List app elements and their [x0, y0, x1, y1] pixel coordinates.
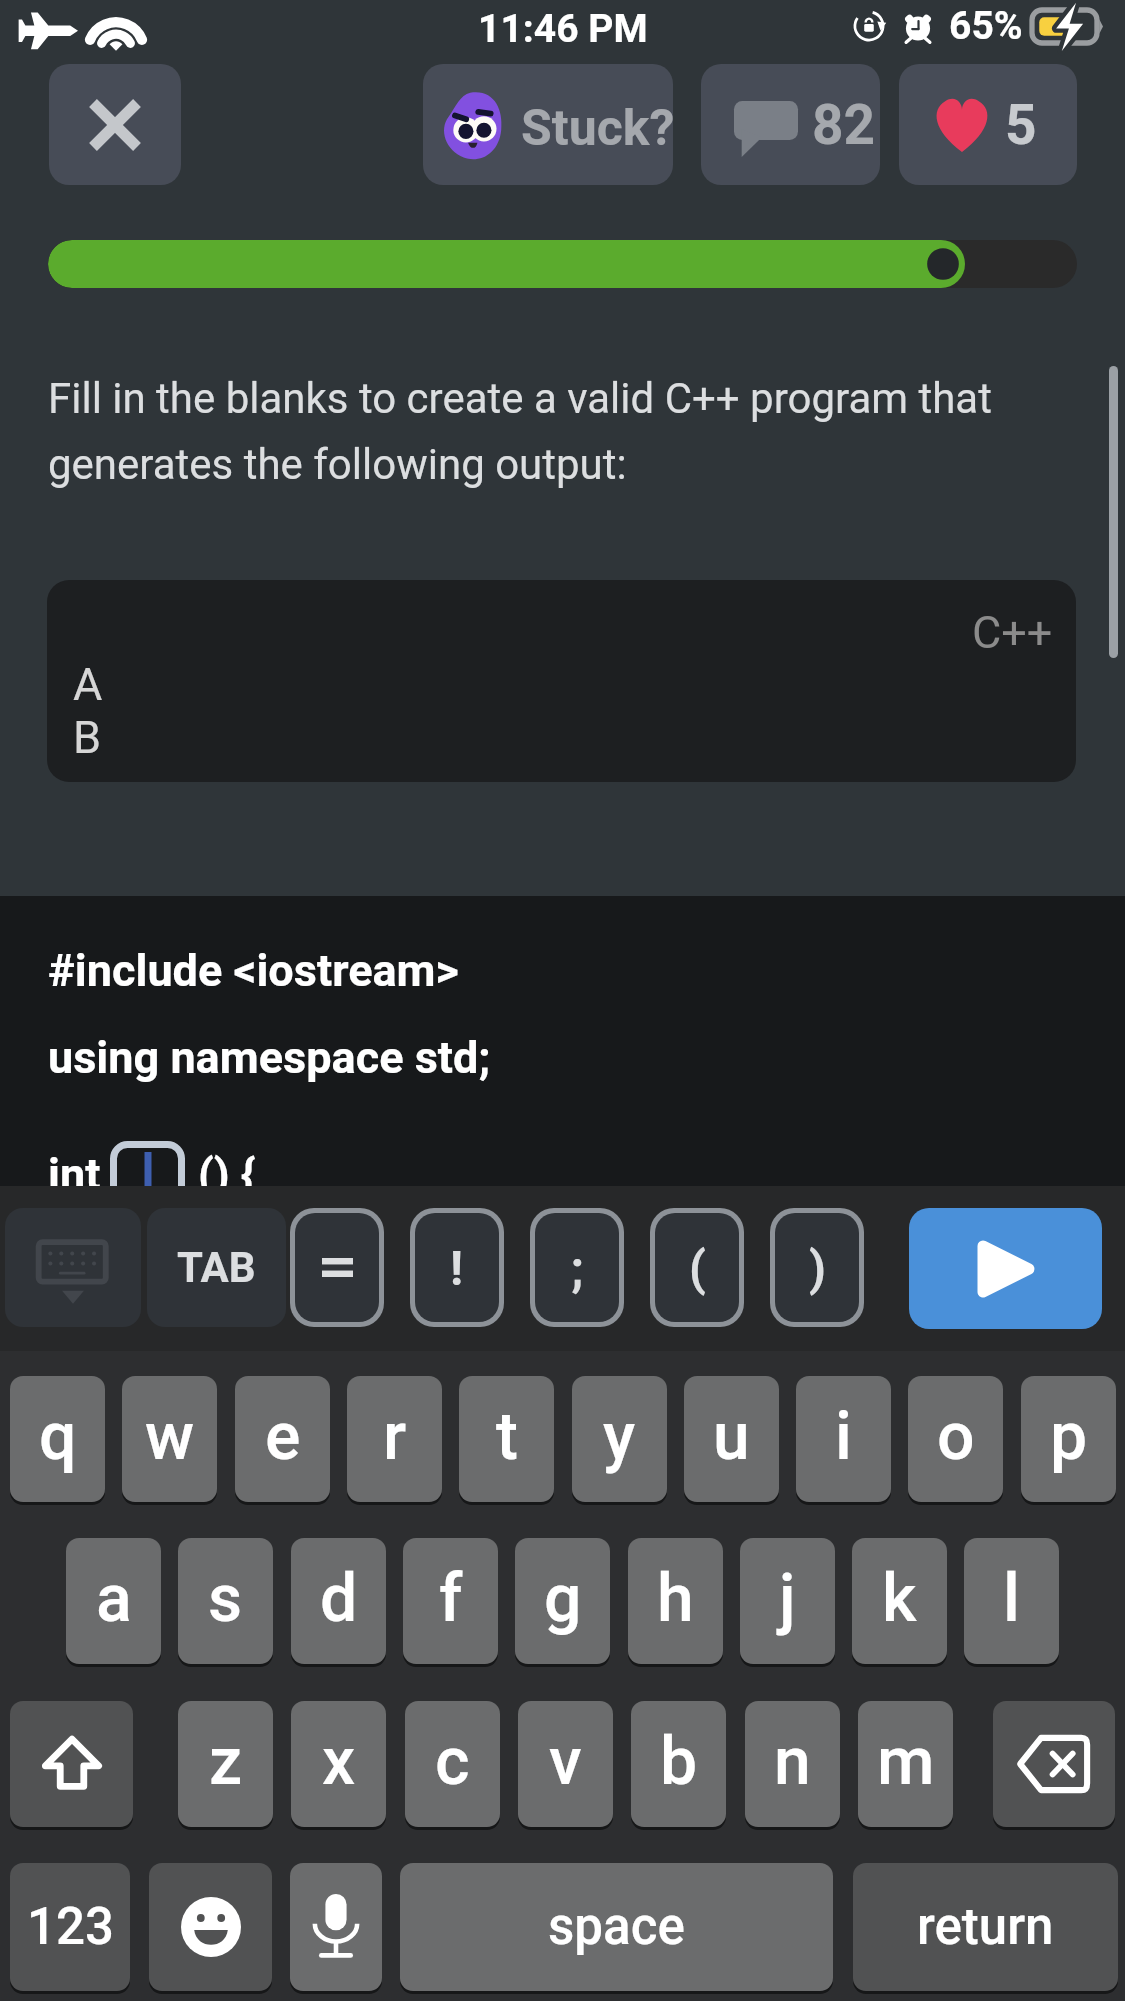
staticText: i [835, 1398, 852, 1475]
staticText: q [39, 1398, 77, 1475]
staticText: using namespace std; [48, 1031, 491, 1084]
staticText: f [439, 1560, 463, 1637]
staticText: a [96, 1560, 132, 1637]
button[interactable]: l [964, 1538, 1059, 1664]
button[interactable]: TAB [147, 1208, 286, 1327]
button[interactable] [295, 1213, 379, 1322]
button[interactable]: q [10, 1376, 105, 1502]
button[interactable]: Close [49, 64, 181, 185]
staticText: j [779, 1560, 796, 1637]
staticText: y [603, 1398, 636, 1475]
button[interactable]: o [908, 1376, 1003, 1502]
staticText: h [657, 1560, 694, 1637]
button[interactable]: i [796, 1376, 891, 1502]
button[interactable]: Dictate [290, 1863, 382, 1991]
button[interactable]: w [122, 1376, 217, 1502]
staticText: x [322, 1723, 356, 1800]
button[interactable]: a [66, 1538, 161, 1664]
staticText: ! [450, 1240, 464, 1296]
staticText: u [713, 1398, 750, 1475]
staticText: l [1003, 1560, 1020, 1637]
button[interactable]: ) [775, 1213, 859, 1322]
button[interactable]: e [235, 1376, 330, 1502]
staticText: g [544, 1560, 582, 1637]
staticText: ( [689, 1240, 706, 1296]
staticText: Fill in the blanks to create a valid C++… [48, 374, 998, 490]
staticText: Stuck? [521, 99, 673, 158]
staticText: w [145, 1398, 195, 1475]
staticText: ) [809, 1240, 826, 1296]
staticText: b [660, 1723, 698, 1800]
button[interactable]: j [740, 1538, 835, 1664]
button[interactable]: Emoji [149, 1863, 272, 1991]
button[interactable]: Hide keyboard [5, 1208, 141, 1327]
staticText: k [882, 1560, 917, 1637]
button[interactable]: Stuck? [423, 64, 673, 185]
button[interactable]: f [403, 1538, 498, 1664]
button[interactable]: y [572, 1376, 667, 1502]
staticText: o [937, 1398, 975, 1475]
staticText: 11:46 PM [478, 6, 648, 52]
button[interactable]: space [400, 1863, 833, 1991]
staticText: 65% [949, 3, 1023, 49]
staticText: space [548, 1897, 685, 1957]
button[interactable]: ! [415, 1213, 499, 1322]
button[interactable]: z [178, 1701, 273, 1827]
staticText: C++ [972, 606, 1053, 659]
button[interactable]: d [291, 1538, 386, 1664]
staticText: d [320, 1560, 358, 1637]
button[interactable]: u [684, 1376, 779, 1502]
staticText: return [917, 1897, 1054, 1957]
staticText: () { [198, 1148, 256, 1201]
button[interactable]: k [852, 1538, 947, 1664]
staticText: A [73, 658, 103, 711]
button[interactable]: Run [909, 1208, 1102, 1329]
button[interactable]: m [858, 1701, 953, 1827]
button[interactable]: return [853, 1863, 1118, 1991]
staticText: TAB [177, 1243, 256, 1292]
staticText: n [774, 1723, 811, 1800]
staticText: e [265, 1398, 301, 1475]
button[interactable]: s [178, 1538, 273, 1664]
button[interactable]: ; [535, 1213, 619, 1322]
staticText: z [209, 1723, 243, 1800]
staticText: t [496, 1398, 518, 1475]
staticText: m [877, 1723, 935, 1800]
button[interactable]: 82 [701, 64, 880, 185]
button[interactable]: Backspace [993, 1701, 1115, 1827]
button[interactable]: 5 [899, 64, 1077, 185]
button[interactable]: t [459, 1376, 554, 1502]
staticText: 82 [812, 93, 876, 157]
button[interactable]: x [291, 1701, 386, 1827]
button[interactable]: ( [655, 1213, 739, 1322]
staticText: B [73, 711, 102, 764]
staticText: r [383, 1398, 407, 1475]
button[interactable]: h [628, 1538, 723, 1664]
button[interactable]: p [1021, 1376, 1116, 1502]
staticText: v [549, 1723, 582, 1800]
staticText: ; [571, 1240, 584, 1296]
button[interactable]: Shift [10, 1701, 133, 1827]
staticText: c [435, 1723, 470, 1800]
staticText: 5 [1005, 93, 1037, 157]
button[interactable]: g [515, 1538, 610, 1664]
staticText: 123 [27, 1897, 114, 1957]
button[interactable]: v [518, 1701, 613, 1827]
button[interactable]: 123 [10, 1863, 130, 1991]
button[interactable]: b [631, 1701, 726, 1827]
staticText: s [208, 1560, 243, 1637]
staticText: int [48, 1148, 101, 1201]
button[interactable]: r [347, 1376, 442, 1502]
staticText: p [1050, 1398, 1088, 1475]
staticText: #include <iostream> [48, 944, 459, 997]
button[interactable]: c [405, 1701, 500, 1827]
button[interactable]: n [745, 1701, 840, 1827]
